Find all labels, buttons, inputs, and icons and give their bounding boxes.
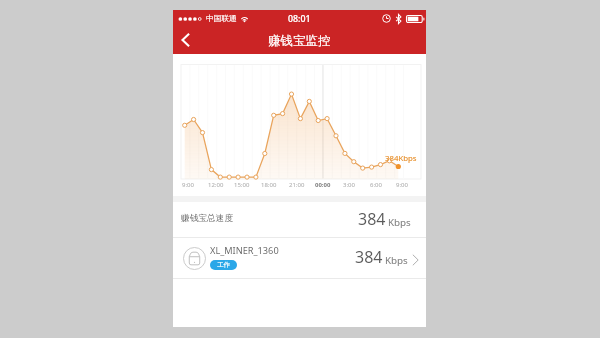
staticText: 3:00 <box>343 181 355 189</box>
staticText: Kbps <box>388 216 411 229</box>
staticText: 384 <box>355 246 383 268</box>
staticText: 赚钱宝总速度 <box>181 213 234 224</box>
staticText: 工作 <box>217 261 230 269</box>
staticText: 15:00 <box>234 181 250 189</box>
staticText: 21:00 <box>289 181 305 189</box>
staticText: XL_MINER_1360 <box>210 244 279 257</box>
staticText: 08:01 <box>288 13 311 25</box>
staticText: 9:00 <box>396 181 408 189</box>
staticText: 6:00 <box>370 181 382 189</box>
staticText: Kbps <box>385 254 408 267</box>
staticText: 赚钱宝监控 <box>268 33 331 49</box>
staticText: 中国联通 <box>206 14 237 24</box>
staticText: 384 <box>358 208 386 230</box>
staticText: 00:00 <box>315 181 331 189</box>
staticText: 9:00 <box>182 181 194 189</box>
button[interactable]: Back <box>172 26 199 53</box>
staticText: 18:00 <box>261 181 277 189</box>
button[interactable]: 赚钱宝总速度 <box>173 202 426 237</box>
staticText: 12:00 <box>208 181 224 189</box>
button[interactable]: XL_MINER_1360 <box>173 238 426 278</box>
staticText: 384Kbps <box>385 153 417 164</box>
